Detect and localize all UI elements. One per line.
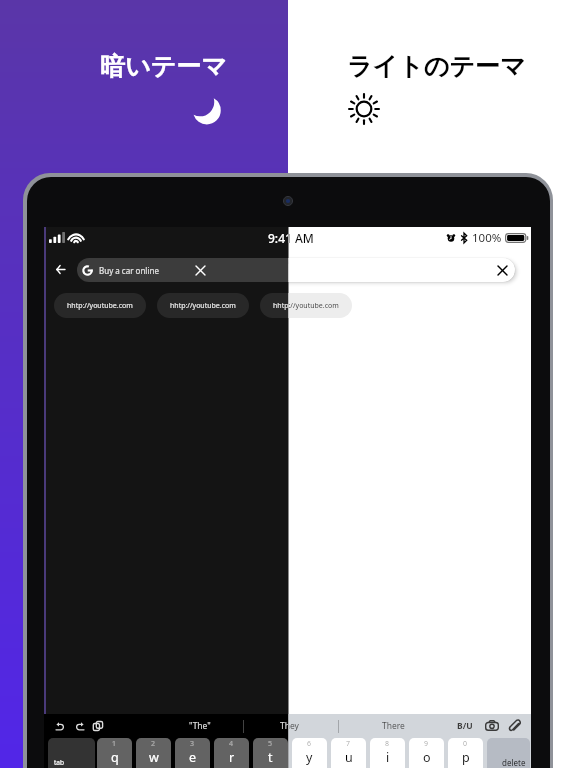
staticText: tab bbox=[54, 758, 64, 767]
staticText: 9 bbox=[424, 739, 429, 749]
staticText: They bbox=[280, 720, 299, 732]
staticText: p bbox=[462, 749, 470, 766]
button[interactable]: 7 bbox=[331, 738, 366, 768]
button[interactable]: 7 bbox=[331, 738, 366, 768]
button[interactable]: Back bbox=[50, 258, 71, 281]
button[interactable]: 1 bbox=[97, 738, 132, 768]
staticText: ライトのテーマ bbox=[347, 51, 526, 82]
button[interactable]: hhtp://youtube.com bbox=[157, 293, 249, 318]
staticText: i bbox=[386, 749, 390, 766]
staticText: o bbox=[423, 749, 431, 766]
staticText: r bbox=[229, 749, 235, 766]
staticText: 9:41 AM bbox=[268, 230, 314, 246]
staticText: B/U bbox=[457, 720, 473, 732]
button[interactable]: 3 bbox=[175, 738, 210, 768]
staticText: q bbox=[111, 749, 119, 766]
button[interactable]: 5 bbox=[253, 738, 288, 768]
button[interactable]: 8 bbox=[370, 738, 405, 768]
other: Front camera bbox=[283, 196, 293, 206]
staticText: e bbox=[189, 749, 197, 766]
staticText: There bbox=[382, 720, 405, 732]
staticText: 9:41 AM bbox=[268, 230, 314, 246]
staticText: 3 bbox=[190, 739, 195, 749]
button[interactable]: hhtp://youtube.com bbox=[54, 293, 146, 318]
staticText: 5 bbox=[268, 739, 273, 749]
button[interactable]: Clear search bbox=[191, 261, 209, 279]
staticText: 8 bbox=[385, 739, 390, 749]
button[interactable]: tab bbox=[48, 738, 95, 768]
staticText: hhtp://youtube.com bbox=[273, 301, 339, 311]
staticText: hhtp://youtube.com bbox=[273, 301, 339, 311]
staticText: hhtp://youtube.com bbox=[170, 301, 236, 311]
button[interactable]: 9 bbox=[409, 738, 444, 768]
button[interactable]: 6 bbox=[292, 738, 327, 768]
staticText: 7 bbox=[346, 739, 351, 749]
button[interactable]: 1 bbox=[97, 738, 132, 768]
staticText: 4 bbox=[229, 739, 234, 749]
staticText: Buy a car online bbox=[99, 265, 159, 276]
staticText: 100% bbox=[472, 230, 502, 246]
staticText: There bbox=[382, 720, 405, 732]
staticText: 1 bbox=[112, 739, 117, 749]
button[interactable]: hhtp://youtube.com bbox=[157, 293, 249, 318]
staticText: r bbox=[229, 749, 235, 766]
staticText: 5 bbox=[268, 739, 273, 749]
staticText: 0 bbox=[463, 739, 468, 749]
button[interactable]: Buy a car online bbox=[77, 258, 515, 282]
staticText: 暗いテーマ bbox=[100, 51, 227, 82]
button[interactable]: tab bbox=[48, 738, 95, 768]
staticText: e bbox=[189, 749, 197, 766]
staticText: 3 bbox=[190, 739, 195, 749]
staticText: 2 bbox=[151, 739, 156, 749]
staticText: delete bbox=[502, 757, 526, 768]
staticText: 7 bbox=[346, 739, 351, 749]
staticText: t bbox=[268, 749, 273, 766]
button[interactable]: delete bbox=[487, 738, 530, 768]
button[interactable]: 2 bbox=[136, 738, 171, 768]
button[interactable]: 4 bbox=[214, 738, 249, 768]
button[interactable]: 5 bbox=[253, 738, 288, 768]
button[interactable]: 0 bbox=[448, 738, 483, 768]
staticText: "The" bbox=[189, 720, 211, 732]
button[interactable]: Clear search bbox=[493, 261, 511, 279]
staticText: y bbox=[306, 749, 313, 766]
staticText: B/U bbox=[457, 720, 473, 732]
staticText: t bbox=[268, 749, 273, 766]
staticText: o bbox=[423, 749, 431, 766]
button[interactable]: Clear search bbox=[493, 261, 511, 279]
staticText: Buy a car online bbox=[99, 265, 159, 276]
button[interactable]: 0 bbox=[448, 738, 483, 768]
staticText: "The" bbox=[189, 720, 211, 732]
staticText: 100% bbox=[472, 230, 502, 246]
button[interactable]: Clear search bbox=[191, 261, 209, 279]
staticText: hhtp://youtube.com bbox=[67, 301, 133, 311]
button[interactable]: Back bbox=[50, 258, 71, 281]
staticText: 1 bbox=[112, 739, 117, 749]
staticText: 0 bbox=[463, 739, 468, 749]
staticText: y bbox=[306, 749, 313, 766]
button[interactable]: 8 bbox=[370, 738, 405, 768]
button[interactable]: 3 bbox=[175, 738, 210, 768]
staticText: 9 bbox=[424, 739, 429, 749]
staticText: 8 bbox=[385, 739, 390, 749]
staticText: 6 bbox=[307, 739, 312, 749]
staticText: hhtp://youtube.com bbox=[67, 301, 133, 311]
button[interactable]: 9 bbox=[409, 738, 444, 768]
staticText: They bbox=[280, 720, 299, 732]
button[interactable]: hhtp://youtube.com bbox=[260, 293, 352, 318]
staticText: 4 bbox=[229, 739, 234, 749]
button[interactable]: 4 bbox=[214, 738, 249, 768]
staticText: u bbox=[345, 749, 353, 766]
staticText: i bbox=[386, 749, 390, 766]
staticText: q bbox=[111, 749, 119, 766]
button[interactable]: 6 bbox=[292, 738, 327, 768]
staticText: p bbox=[462, 749, 470, 766]
button[interactable]: delete bbox=[487, 738, 530, 768]
staticText: tab bbox=[54, 758, 64, 767]
staticText: 6 bbox=[307, 739, 312, 749]
button[interactable]: Buy a car online bbox=[77, 258, 515, 282]
button[interactable]: 2 bbox=[136, 738, 171, 768]
button[interactable]: hhtp://youtube.com bbox=[260, 293, 352, 318]
staticText: w bbox=[149, 749, 159, 766]
button[interactable]: hhtp://youtube.com bbox=[54, 293, 146, 318]
